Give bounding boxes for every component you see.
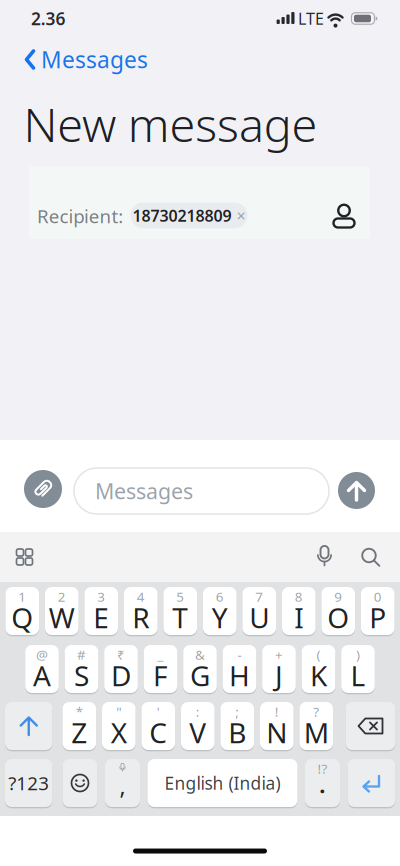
staticText: X xyxy=(111,714,127,751)
button[interactable] xyxy=(62,759,97,807)
staticText: ( xyxy=(316,646,320,663)
staticText: ? xyxy=(313,703,319,720)
staticText: New message xyxy=(23,93,317,155)
button[interactable]: !? xyxy=(305,759,340,807)
button[interactable]: Messages xyxy=(74,468,329,514)
staticText: 5 xyxy=(176,588,184,605)
staticText: 2 xyxy=(58,588,66,605)
button[interactable]: * xyxy=(62,702,96,750)
staticText: B xyxy=(228,714,246,751)
button[interactable]: Messages xyxy=(24,44,148,74)
staticText: 18730218809 xyxy=(132,205,231,226)
staticText: Q xyxy=(11,599,33,636)
button[interactable]: 1 xyxy=(5,587,39,635)
button[interactable]: # xyxy=(65,645,98,693)
button[interactable]: ? xyxy=(299,702,333,750)
staticText: T xyxy=(172,599,188,636)
button[interactable] xyxy=(338,472,375,509)
staticText: C xyxy=(149,714,167,751)
button[interactable]: ' xyxy=(141,702,175,750)
staticText: @ xyxy=(36,646,48,663)
staticText: English (India) xyxy=(164,771,280,794)
button[interactable] xyxy=(15,548,33,566)
staticText: V xyxy=(189,714,206,751)
button[interactable] xyxy=(361,547,380,566)
button[interactable]: 7 xyxy=(242,587,276,635)
staticText: 7 xyxy=(255,588,263,605)
staticText: 6 xyxy=(216,588,224,605)
button[interactable]: & xyxy=(183,645,217,693)
button[interactable]: ₹ xyxy=(104,645,138,693)
staticText: Messages xyxy=(95,477,193,505)
staticText: : xyxy=(196,703,200,720)
button[interactable]: 5 xyxy=(163,587,197,635)
button[interactable]: 18730218809 xyxy=(130,202,247,228)
button[interactable]: : xyxy=(181,702,215,750)
staticText: ; xyxy=(235,703,239,720)
staticText: F xyxy=(153,657,168,694)
staticText: 3 xyxy=(97,588,105,605)
button[interactable]: 0 xyxy=(361,587,394,635)
button[interactable] xyxy=(345,702,395,750)
staticText: _ xyxy=(157,646,163,663)
staticText: Z xyxy=(71,714,87,751)
staticText: L xyxy=(350,657,365,694)
staticText: O xyxy=(327,599,349,636)
staticText: . xyxy=(319,768,326,800)
staticText: P xyxy=(369,599,386,636)
staticText: ₹ xyxy=(117,646,125,663)
staticText: , xyxy=(119,771,125,801)
button[interactable]: @ xyxy=(25,645,59,693)
button[interactable]: English (India) xyxy=(147,759,297,807)
staticText: 1 xyxy=(18,588,26,605)
button[interactable]: + xyxy=(262,645,296,693)
button[interactable]: ) xyxy=(341,645,375,693)
button[interactable]: ; xyxy=(220,702,254,750)
staticText: ) xyxy=(356,646,360,663)
button[interactable]: ! xyxy=(260,702,294,750)
staticText: ' xyxy=(157,703,160,720)
button[interactable]: 4 xyxy=(124,587,158,635)
staticText: J xyxy=(275,657,283,694)
staticText: * xyxy=(76,703,83,720)
staticText: # xyxy=(77,646,86,663)
button[interactable]: " xyxy=(102,702,136,750)
staticText: 4 xyxy=(137,588,145,605)
staticText: ?123 xyxy=(8,771,49,795)
staticText: & xyxy=(195,646,205,663)
staticText: - xyxy=(237,646,241,663)
staticText: LTE xyxy=(298,8,324,29)
staticText: × xyxy=(236,205,245,226)
button[interactable] xyxy=(333,204,355,228)
button[interactable] xyxy=(347,759,395,807)
staticText: 9 xyxy=(334,588,342,605)
staticText: Messages xyxy=(41,44,148,74)
staticText: K xyxy=(310,657,327,694)
button[interactable] xyxy=(314,545,334,569)
staticText: G xyxy=(190,657,210,694)
staticText: U xyxy=(249,599,269,636)
button[interactable]: 3 xyxy=(84,587,118,635)
button[interactable]: - xyxy=(223,645,256,693)
staticText: W xyxy=(49,599,75,636)
staticText: H xyxy=(229,657,250,694)
staticText: N xyxy=(266,714,287,751)
staticText: ! xyxy=(275,703,279,720)
staticText: Y xyxy=(212,599,228,636)
staticText: D xyxy=(111,657,131,694)
staticText: " xyxy=(116,703,121,720)
button[interactable]: 9 xyxy=(321,587,355,635)
staticText: 2.36 xyxy=(31,7,65,30)
button[interactable]: 8 xyxy=(282,587,315,635)
staticText: 0 xyxy=(374,588,382,605)
staticText: !? xyxy=(317,760,327,777)
button[interactable] xyxy=(24,470,62,508)
button[interactable]: ?123 xyxy=(5,759,52,807)
button[interactable] xyxy=(5,702,52,750)
button[interactable]: , xyxy=(105,759,140,807)
staticText: Recipient: xyxy=(37,204,123,228)
button[interactable]: 2 xyxy=(45,587,79,635)
button[interactable]: 6 xyxy=(203,587,236,635)
button[interactable]: ( xyxy=(302,645,335,693)
button[interactable]: _ xyxy=(144,645,177,693)
